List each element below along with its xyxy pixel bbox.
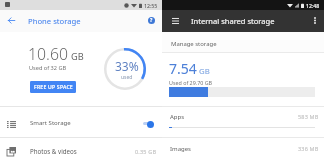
- staticText: 12:48: [306, 2, 320, 9]
- staticText: Internal shared storage: [191, 16, 275, 26]
- staticText: Phone storage: [28, 16, 81, 26]
- button[interactable]: FREE UP SPACE: [30, 81, 76, 93]
- staticText: Used of 32 GB: [29, 64, 67, 72]
- staticText: ?: [150, 17, 153, 24]
- staticText: Photos & videos: [30, 147, 77, 155]
- button[interactable]: Apps: [162, 107, 324, 138]
- button[interactable]: Photos & videos: [0, 138, 162, 160]
- staticText: Apps: [170, 113, 185, 121]
- staticText: Manage storage: [171, 40, 217, 48]
- button[interactable]: Back: [3, 12, 20, 29]
- staticText: Images: [170, 145, 191, 153]
- button[interactable]: Menu: [166, 12, 184, 30]
- staticText: GB: [199, 66, 210, 77]
- staticText: 336 MB: [298, 145, 319, 152]
- button[interactable]: Images: [162, 138, 324, 160]
- button[interactable]: More options: [306, 11, 324, 29]
- staticText: 33%: [115, 58, 139, 74]
- button[interactable]: Help: [143, 12, 160, 29]
- button[interactable]: Smart Storage: [0, 107, 162, 138]
- staticText: 10.60: [28, 43, 68, 65]
- staticText: Used of 29.70 GB: [169, 79, 213, 86]
- staticText: 0.35 GB: [135, 148, 157, 155]
- staticText: 12:55: [144, 2, 158, 9]
- staticText: 7.54: [169, 59, 197, 78]
- staticText: Smart Storage: [30, 119, 71, 127]
- staticText: GB: [71, 50, 84, 63]
- staticText: FREE UP SPACE: [34, 84, 73, 91]
- staticText: 583 MB: [298, 113, 319, 120]
- staticText: used: [121, 74, 133, 81]
